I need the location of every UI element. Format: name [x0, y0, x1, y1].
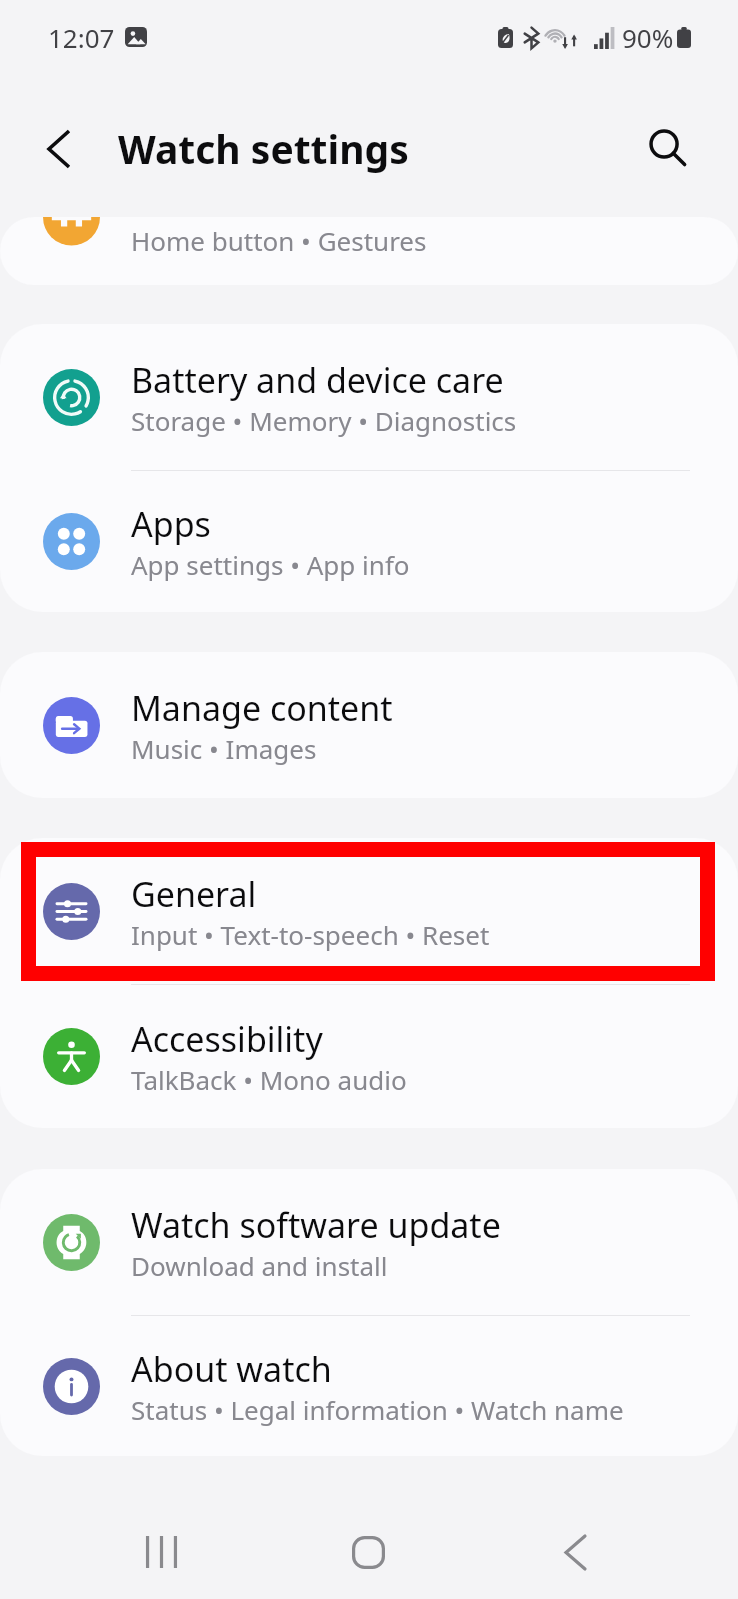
button[interactable]: Accessibility: [0, 985, 738, 1128]
staticText: Battery and device care: [131, 357, 504, 403]
button[interactable]: Back: [525, 1507, 625, 1597]
staticText: 12:07: [48, 20, 115, 55]
staticText: TalkBack • Mono audio: [131, 1062, 407, 1097]
button[interactable]: Apps: [0, 471, 738, 612]
staticText: Watch settings: [118, 122, 409, 175]
button[interactable]: Battery and device care: [0, 324, 738, 470]
staticText: 90%: [622, 20, 674, 55]
staticText: Status • Legal information • Watch name: [131, 1392, 624, 1427]
staticText: Home button • Gestures: [131, 223, 427, 258]
button[interactable]: Watch software update: [0, 1169, 738, 1315]
button[interactable]: About watch: [0, 1316, 738, 1456]
staticText: Accessibility: [131, 1016, 323, 1062]
button[interactable]: General: [0, 838, 738, 984]
staticText: General: [131, 871, 257, 917]
button[interactable]: Back: [26, 116, 92, 182]
button[interactable]: Search: [634, 116, 700, 182]
staticText: Apps: [131, 501, 211, 547]
staticText: Input • Text-to-speech • Reset: [131, 917, 490, 952]
staticText: Music • Images: [131, 731, 317, 766]
staticText: Download and install: [131, 1248, 388, 1283]
button[interactable]: Manage content: [0, 652, 738, 798]
staticText: Storage • Memory • Diagnostics: [131, 403, 517, 438]
button[interactable]: Home: [318, 1507, 418, 1597]
staticText: About watch: [131, 1346, 332, 1392]
button[interactable]: Home button • Gestures: [0, 217, 738, 285]
staticText: Manage content: [131, 685, 393, 731]
button[interactable]: Recent apps: [111, 1507, 211, 1597]
staticText: App settings • App info: [131, 547, 410, 582]
staticText: Watch software update: [131, 1202, 501, 1248]
